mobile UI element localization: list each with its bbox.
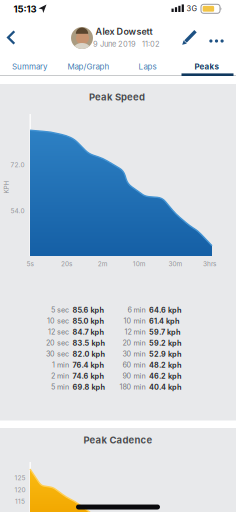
staticText: 64.6 kph xyxy=(149,306,182,314)
staticText: 30 sec xyxy=(46,350,69,358)
staticText: 30 min xyxy=(122,350,145,358)
staticText: 20 sec xyxy=(46,339,69,347)
staticText: 40.4 kph xyxy=(149,383,182,391)
staticText: 12 sec xyxy=(48,328,69,336)
staticText: KPH xyxy=(0,183,13,191)
staticText: Peaks xyxy=(194,62,218,71)
staticText: Alex Dowsett xyxy=(95,26,152,37)
staticText: 59.7 kph xyxy=(149,328,181,336)
button[interactable]: Laps xyxy=(118,58,177,75)
staticText: 2m xyxy=(98,260,108,268)
staticText: Map/Graph xyxy=(67,62,109,71)
button[interactable]: Summary xyxy=(0,58,59,75)
staticText: 90 min xyxy=(122,372,145,380)
staticText: 85.0 kph xyxy=(72,317,104,325)
staticText: 3hrs xyxy=(203,260,216,268)
staticText: 5 min xyxy=(51,383,69,391)
staticText: 85.6 kph xyxy=(72,306,104,314)
staticText: 15:13 xyxy=(13,3,36,15)
staticText: Laps xyxy=(138,62,156,71)
button[interactable]: Map/Graph xyxy=(59,58,118,75)
staticText: 180 min xyxy=(119,383,145,391)
staticText: 120 xyxy=(14,486,25,494)
staticText: 59.2 kph xyxy=(149,339,182,347)
staticText: 3G xyxy=(186,4,197,13)
staticText: 30m xyxy=(169,260,183,268)
button[interactable]: Edit xyxy=(181,29,198,47)
staticText: 11:02 xyxy=(142,39,160,49)
staticText: 2 min xyxy=(51,372,69,380)
staticText: 20 min xyxy=(122,339,145,347)
staticText: 20s xyxy=(61,260,72,268)
staticText: 60 min xyxy=(122,361,145,369)
staticText: 10m xyxy=(133,260,146,268)
staticText: 52.9 kph xyxy=(149,350,182,358)
staticText: 5s xyxy=(26,260,33,268)
staticText: Peak Cadence xyxy=(83,434,152,446)
staticText: 125 xyxy=(14,474,25,482)
staticText: 5 sec xyxy=(51,306,69,314)
staticText: 61.4 kph xyxy=(149,317,180,325)
staticText: 74.6 kph xyxy=(72,372,104,380)
staticText: 76.4 kph xyxy=(72,361,104,369)
button[interactable]: Back xyxy=(0,24,24,50)
staticText: Peak Speed xyxy=(89,91,145,103)
staticText: 6 min xyxy=(127,306,145,314)
button[interactable]: More xyxy=(206,33,226,49)
staticText: 72.0 xyxy=(10,161,24,169)
staticText: Summary xyxy=(12,62,47,71)
staticText: 10 sec xyxy=(47,317,69,325)
staticText: 48.2 kph xyxy=(149,361,182,369)
staticText: 10 min xyxy=(123,317,145,325)
staticText: 83.5 kph xyxy=(72,339,105,347)
staticText: 54.0 xyxy=(10,207,24,215)
button[interactable]: Peaks xyxy=(177,58,236,75)
staticText: 115 xyxy=(15,498,25,505)
staticText: 46.2 kph xyxy=(149,372,182,380)
staticText: 9 June 2019 xyxy=(93,39,136,49)
staticText: 1 min xyxy=(52,361,69,369)
staticText: 69.8 kph xyxy=(72,383,105,391)
staticText: 84.7 kph xyxy=(72,328,104,336)
staticText: 12 min xyxy=(124,328,145,336)
staticText: 82.0 kph xyxy=(72,350,105,358)
